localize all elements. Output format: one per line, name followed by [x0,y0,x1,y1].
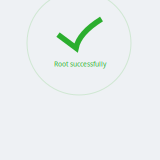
staticText: Root successfully [54,60,106,68]
